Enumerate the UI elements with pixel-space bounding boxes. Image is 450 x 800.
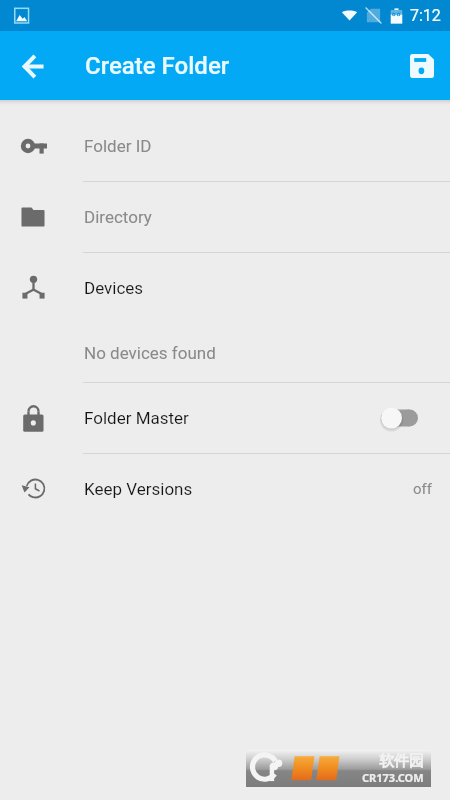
staticText: Folder Master xyxy=(84,408,381,428)
staticText: CR173.COM xyxy=(362,770,424,785)
staticText: Keep Versions xyxy=(84,479,413,499)
staticText: No devices found xyxy=(84,343,216,363)
staticText: 软件园 xyxy=(379,752,424,771)
button[interactable]: Folder ID xyxy=(0,111,450,181)
button[interactable]: Directory xyxy=(0,182,450,252)
staticText: Directory xyxy=(84,207,450,227)
staticText: Folder ID xyxy=(84,136,450,156)
button[interactable]: Folder Master xyxy=(0,383,450,453)
staticText: off xyxy=(413,480,432,498)
button[interactable]: Back xyxy=(11,44,55,88)
button[interactable]: Save xyxy=(400,44,444,88)
button[interactable]: Devices xyxy=(0,253,450,323)
button[interactable]: Folder Master toggle xyxy=(381,394,450,442)
button[interactable]: Keep Versions xyxy=(0,454,450,524)
staticText: Create Folder xyxy=(85,52,230,80)
staticText: Devices xyxy=(84,278,450,298)
staticText: 7:12 xyxy=(410,6,441,25)
button[interactable]: No devices found xyxy=(0,323,450,382)
